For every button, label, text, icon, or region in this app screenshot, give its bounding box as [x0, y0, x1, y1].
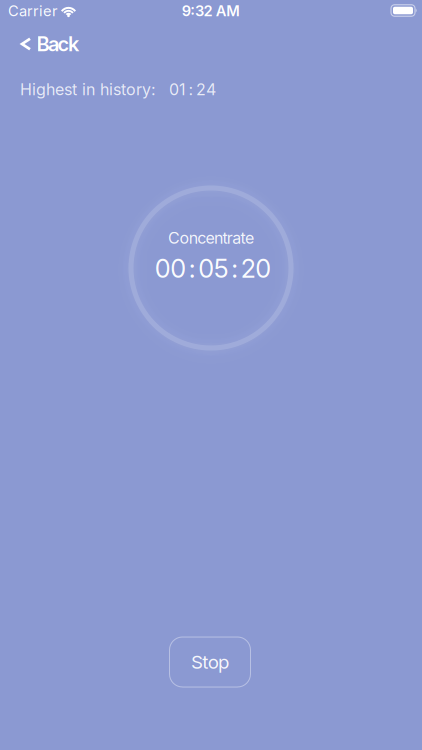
staticText: :	[231, 254, 238, 283]
staticText: 00	[155, 254, 186, 283]
staticText: 05	[198, 254, 229, 283]
staticText: Stop	[191, 651, 229, 673]
staticText: 20	[241, 254, 271, 283]
staticText: :	[188, 80, 193, 99]
staticText: Back	[36, 32, 79, 56]
staticText: :	[189, 254, 196, 283]
button[interactable]: Stop	[169, 637, 250, 687]
button[interactable]: Back	[22, 32, 79, 56]
staticText: Carrier	[8, 2, 58, 20]
staticText: Concentrate	[168, 229, 254, 247]
staticText: 9:32 AM	[182, 2, 240, 20]
staticText: 01	[169, 80, 186, 99]
staticText: 24	[196, 80, 216, 99]
staticText: Highest in history:	[20, 80, 156, 99]
